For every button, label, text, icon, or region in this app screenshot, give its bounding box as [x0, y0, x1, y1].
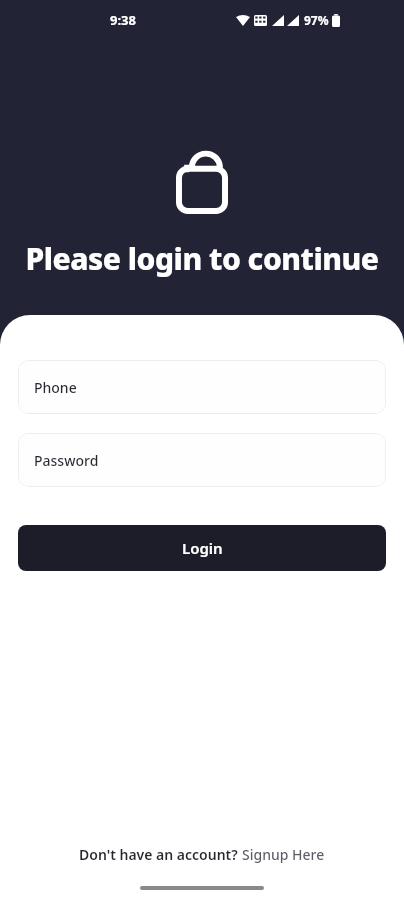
- staticText: 9:38: [110, 11, 136, 29]
- staticText: 97%: [304, 12, 329, 28]
- staticText: Password: [34, 451, 99, 470]
- staticText: Phone: [34, 378, 77, 397]
- button[interactable]: Don't have an account?: [73, 841, 331, 868]
- staticText: Login: [182, 538, 223, 558]
- button[interactable]: Password: [18, 433, 386, 487]
- button[interactable]: Phone: [18, 360, 386, 414]
- staticText: Don't have an account?: [79, 845, 242, 864]
- staticText: Signup Here: [242, 845, 325, 864]
- button[interactable]: Login: [18, 525, 386, 571]
- other: Unlocked: [176, 138, 228, 214]
- staticText: Please login to continue: [0, 238, 404, 279]
